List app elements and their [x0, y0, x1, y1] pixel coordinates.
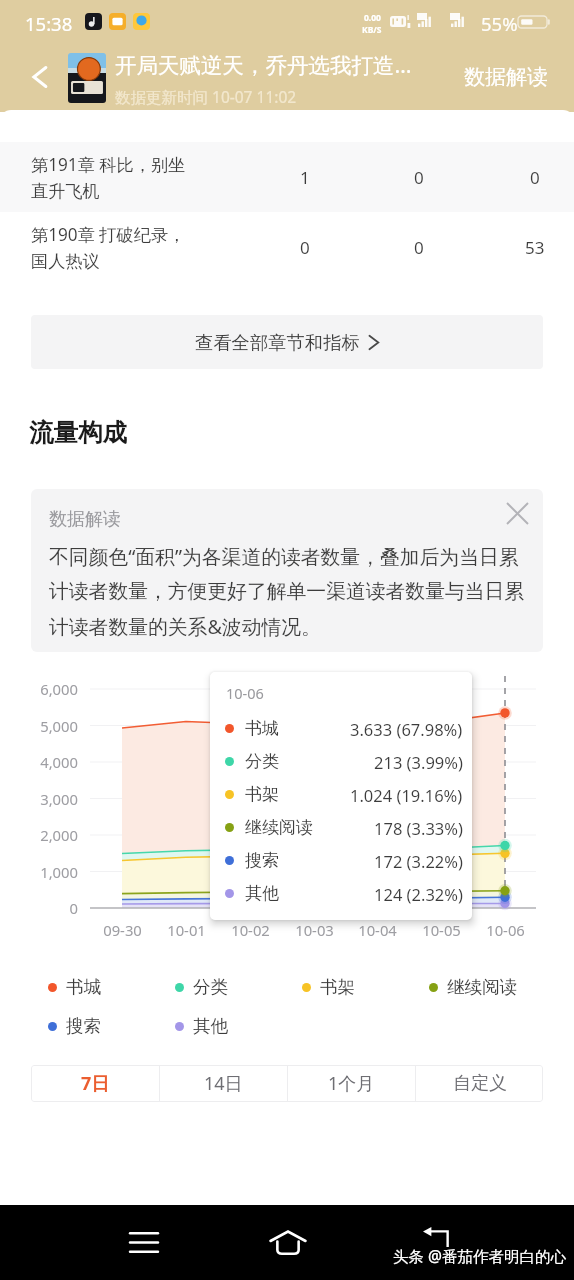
button[interactable]: 数据解读	[450, 52, 562, 102]
button[interactable]: 第191章 科比，别坐 直升飞机	[0, 142, 574, 212]
staticText: 分类	[193, 976, 229, 998]
staticText: 数据更新时间 10-07 11:02	[115, 86, 297, 107]
staticText: 0	[414, 166, 424, 189]
staticText: 0.00	[364, 12, 381, 24]
staticText: 213 (3.99%)	[374, 751, 463, 773]
staticText: 14日	[204, 1071, 243, 1096]
staticText: 09-30	[103, 920, 142, 940]
staticText: 分类	[245, 751, 279, 772]
staticText: 开局天赋逆天，乔丹选我打造…	[115, 50, 412, 79]
button[interactable]: 14日	[160, 1065, 287, 1102]
staticText: 书架	[320, 976, 356, 998]
staticText: 10-01	[167, 920, 206, 940]
staticText: 数据解读	[464, 64, 548, 90]
staticText: 10-02	[231, 920, 270, 940]
staticText: 0	[69, 898, 78, 918]
staticText: 书城	[245, 718, 279, 739]
staticText: 10-06	[486, 920, 525, 940]
staticText: 7日	[81, 1071, 110, 1096]
staticText: 10-03	[295, 920, 334, 940]
staticText: 2,000	[40, 825, 78, 845]
button[interactable]: Home	[253, 1216, 322, 1268]
button[interactable]: Back	[385, 1216, 574, 1268]
staticText: 3,000	[40, 789, 78, 809]
button[interactable]: Back	[22, 52, 58, 102]
staticText: 搜索	[66, 1015, 102, 1037]
staticText: 书城	[66, 976, 102, 998]
staticText: 1,000	[40, 862, 78, 882]
staticText: 10-04	[358, 920, 397, 940]
staticText: 172 (3.22%)	[374, 850, 463, 872]
staticText: 数据解读	[49, 508, 121, 531]
button[interactable]: Close	[502, 498, 532, 528]
staticText: 自定义	[453, 1072, 507, 1095]
staticText: 第191章 科比，别坐 直升飞机	[31, 153, 251, 202]
button[interactable]: Recent apps	[109, 1216, 178, 1268]
staticText: 流量构成	[29, 417, 127, 448]
staticText: 其他	[193, 1015, 229, 1037]
button[interactable]: 1个月	[288, 1065, 415, 1102]
staticText: 0	[300, 236, 310, 259]
staticText: 第190章 打破纪录， 国人热议	[31, 223, 251, 272]
staticText: 15:38	[25, 11, 73, 36]
staticText: 4,000	[40, 752, 78, 772]
staticText: 10-05	[422, 920, 461, 940]
staticText: 查看全部章节和指标	[195, 331, 360, 354]
staticText: 头条 @番茄作者明白的心	[393, 1245, 566, 1266]
staticText: 0	[530, 166, 540, 189]
staticText: 1	[300, 166, 310, 189]
staticText: 10-06	[226, 683, 264, 703]
staticText: 178 (3.33%)	[374, 817, 463, 839]
staticText: 继续阅读	[245, 817, 313, 838]
staticText: KB/S	[362, 24, 382, 36]
staticText: 55%	[481, 11, 518, 36]
staticText: 其他	[245, 883, 279, 904]
staticText: 书架	[245, 784, 279, 805]
staticText: 继续阅读	[447, 976, 518, 998]
staticText: 不同颜色“面积”为各渠道的读者数量，叠加后为当日累计读者数量，方便更好了解单一渠…	[49, 543, 531, 640]
button[interactable]: 第190章 打破纪录， 国人热议	[0, 212, 574, 282]
staticText: 5,000	[40, 716, 78, 736]
button[interactable]: 查看全部章节和指标	[31, 315, 543, 369]
staticText: 1个月	[328, 1071, 375, 1096]
staticText: 53	[525, 236, 545, 259]
staticText: 124 (2.32%)	[374, 883, 463, 905]
button[interactable]: 7日	[31, 1065, 159, 1102]
staticText: 6,000	[40, 679, 78, 699]
staticText: 1.024 (19.16%)	[350, 784, 463, 806]
staticText: 搜索	[245, 850, 279, 871]
staticText: 0	[414, 236, 424, 259]
staticText: 3.633 (67.98%)	[350, 718, 463, 740]
button[interactable]: 自定义	[416, 1065, 543, 1102]
